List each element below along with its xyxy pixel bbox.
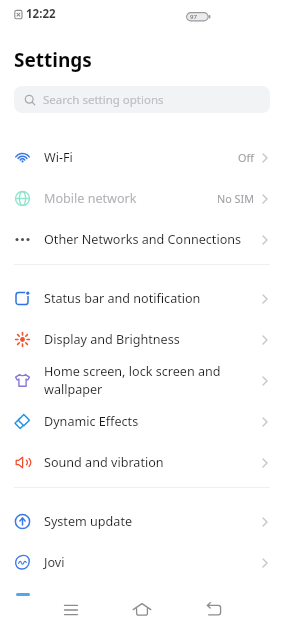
button[interactable]: Mobile network [0, 178, 284, 219]
button[interactable] [195, 596, 233, 624]
staticText: Wi-Fi [44, 149, 238, 166]
staticText: Settings [14, 47, 92, 73]
staticText: Dynamic Effects [44, 413, 262, 430]
staticText: Home screen, lock screen and wallpaper [44, 363, 262, 398]
button[interactable]: Jovi [0, 542, 284, 583]
button[interactable]: System update [0, 501, 284, 542]
button[interactable]: Dynamic Effects [0, 401, 284, 442]
button[interactable] [122, 596, 162, 624]
button[interactable]: Other Networks and Connections [0, 219, 284, 260]
staticText: Display and Brightness [44, 331, 262, 348]
staticText: Status bar and notification [44, 290, 262, 307]
staticText: System update [44, 513, 262, 530]
button[interactable]: Search setting options [14, 86, 270, 113]
staticText: Mobile network [44, 190, 217, 207]
staticText: Other Networks and Connections [44, 231, 262, 248]
staticText: 97 [190, 13, 197, 21]
staticText: Sound and vibration [44, 454, 262, 471]
button[interactable] [51, 596, 91, 624]
button[interactable]: Status bar and notification [0, 278, 284, 319]
button[interactable]: Sound and vibration [0, 442, 284, 483]
button[interactable]: Wi-Fi [0, 137, 284, 178]
staticText: No SIM [217, 191, 254, 206]
staticText: Jovi [44, 554, 262, 571]
button[interactable]: Display and Brightness [0, 319, 284, 360]
staticText: 12:22 [26, 6, 56, 22]
staticText: Off [238, 150, 254, 165]
staticText: Search setting options [43, 92, 164, 108]
button[interactable]: Home screen, lock screen and wallpaper [0, 360, 284, 401]
